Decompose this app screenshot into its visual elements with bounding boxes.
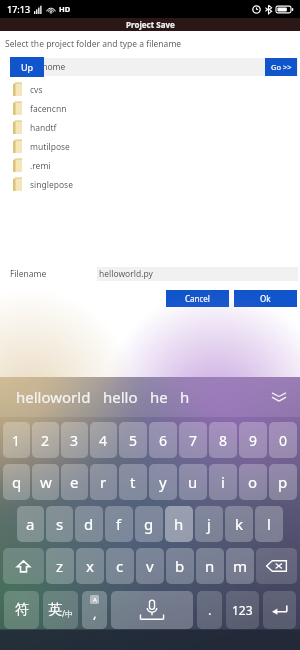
button[interactable]: f <box>105 506 133 542</box>
staticText: k <box>235 514 244 534</box>
button[interactable]: .remi <box>0 156 300 175</box>
button[interactable]: m <box>226 548 254 584</box>
staticText: y <box>159 472 167 492</box>
button[interactable]: w <box>32 464 59 500</box>
button[interactable]: cvs <box>0 80 300 99</box>
staticText: cvs <box>30 84 43 96</box>
button[interactable]: singlepose <box>0 175 300 194</box>
button[interactable]: 7 <box>179 422 207 458</box>
staticText: handtf <box>30 122 57 134</box>
button[interactable]: k <box>225 506 253 542</box>
button[interactable]: e <box>61 464 88 500</box>
button[interactable]: Space <box>111 591 193 629</box>
button[interactable]: z <box>46 548 74 584</box>
button[interactable]: o <box>239 464 267 500</box>
button[interactable]: c <box>106 548 134 584</box>
staticText: 6 <box>159 431 168 450</box>
staticText: mutilpose <box>30 141 70 153</box>
staticText: p <box>278 472 288 492</box>
button[interactable]: Up <box>10 57 44 77</box>
button[interactable]: 5 <box>119 422 147 458</box>
staticText: .remi <box>30 160 51 172</box>
staticText: he <box>150 387 168 407</box>
button[interactable]: Enter <box>263 591 296 629</box>
staticText: hello <box>103 387 138 407</box>
button[interactable]: y <box>149 464 177 500</box>
button[interactable]: x <box>76 548 104 584</box>
button[interactable]: q <box>3 464 30 500</box>
staticText: . <box>208 601 212 619</box>
button[interactable]: 符 <box>4 591 39 629</box>
button[interactable]: a <box>17 506 44 542</box>
staticText: u <box>188 472 198 492</box>
button[interactable]: s <box>46 506 73 542</box>
staticText: Select the project folder and type a fil… <box>5 38 182 50</box>
button[interactable]: Shift <box>3 548 44 584</box>
staticText: b <box>175 556 185 576</box>
staticText: 8 <box>219 431 228 450</box>
button[interactable]: l <box>255 506 283 542</box>
staticText: Filename <box>10 268 47 280</box>
staticText: n <box>205 556 215 576</box>
staticText: 17:13 <box>7 3 31 15</box>
staticText: helloworld <box>16 387 91 407</box>
staticText: x <box>86 556 94 576</box>
button[interactable]: v <box>136 548 164 584</box>
button[interactable]: g <box>135 506 163 542</box>
staticText: f <box>116 514 122 534</box>
button[interactable]: b <box>166 548 194 584</box>
button[interactable]: 8 <box>209 422 237 458</box>
staticText: 2 <box>41 431 50 450</box>
button[interactable]: 4 <box>90 422 117 458</box>
button[interactable]: 2 <box>32 422 59 458</box>
staticText: Project Save <box>126 19 175 30</box>
button[interactable]: 3 <box>61 422 88 458</box>
staticText: Go >> <box>271 62 292 72</box>
button[interactable]: u <box>179 464 207 500</box>
staticText: e <box>70 472 79 492</box>
button[interactable]: n <box>196 548 224 584</box>
button[interactable]: t <box>119 464 147 500</box>
staticText: 英 <box>48 601 62 619</box>
button[interactable]: Cancel <box>166 290 229 307</box>
staticText: 123 <box>232 602 253 618</box>
staticText: v <box>146 556 154 576</box>
button[interactable]: 0 <box>269 422 297 458</box>
staticText: HD <box>59 4 71 14</box>
button[interactable]: helloworld.py <box>97 267 298 281</box>
button[interactable]: 6 <box>149 422 177 458</box>
staticText: a <box>26 514 35 534</box>
button[interactable]: 9 <box>239 422 267 458</box>
staticText: 1 <box>12 431 21 450</box>
button[interactable]: he <box>144 387 174 407</box>
button[interactable]: 1 <box>3 422 30 458</box>
button[interactable]: d <box>75 506 103 542</box>
button[interactable]: Backspace <box>256 548 297 584</box>
button[interactable]: j <box>195 506 223 542</box>
button[interactable]: mutilpose <box>0 137 300 156</box>
button[interactable]: i <box>209 464 237 500</box>
button[interactable]: Collapse suggestions <box>266 384 292 410</box>
button[interactable]: Go >> <box>265 58 297 76</box>
button[interactable]: handtf <box>0 118 300 137</box>
button[interactable]: A <box>82 591 107 629</box>
staticText: 4 <box>99 431 108 450</box>
button[interactable]: facencnn <box>0 99 300 118</box>
button[interactable]: p <box>269 464 297 500</box>
staticText: Cancel <box>185 293 210 304</box>
button[interactable]: . <box>197 591 222 629</box>
button[interactable]: h <box>165 506 193 542</box>
button[interactable]: r <box>90 464 117 500</box>
button[interactable]: 英 <box>43 591 78 629</box>
staticText: h <box>180 387 190 407</box>
button[interactable]: hello <box>97 387 144 407</box>
button[interactable]: h <box>174 387 196 407</box>
staticText: Ok <box>260 293 271 304</box>
button[interactable]: Ok <box>234 290 297 307</box>
staticText: /中 <box>62 608 73 619</box>
button[interactable]: 123 <box>226 591 259 629</box>
staticText: l <box>267 514 271 534</box>
staticText: 符 <box>15 601 29 619</box>
staticText: d <box>84 514 94 534</box>
button[interactable]: helloworld <box>10 387 97 407</box>
